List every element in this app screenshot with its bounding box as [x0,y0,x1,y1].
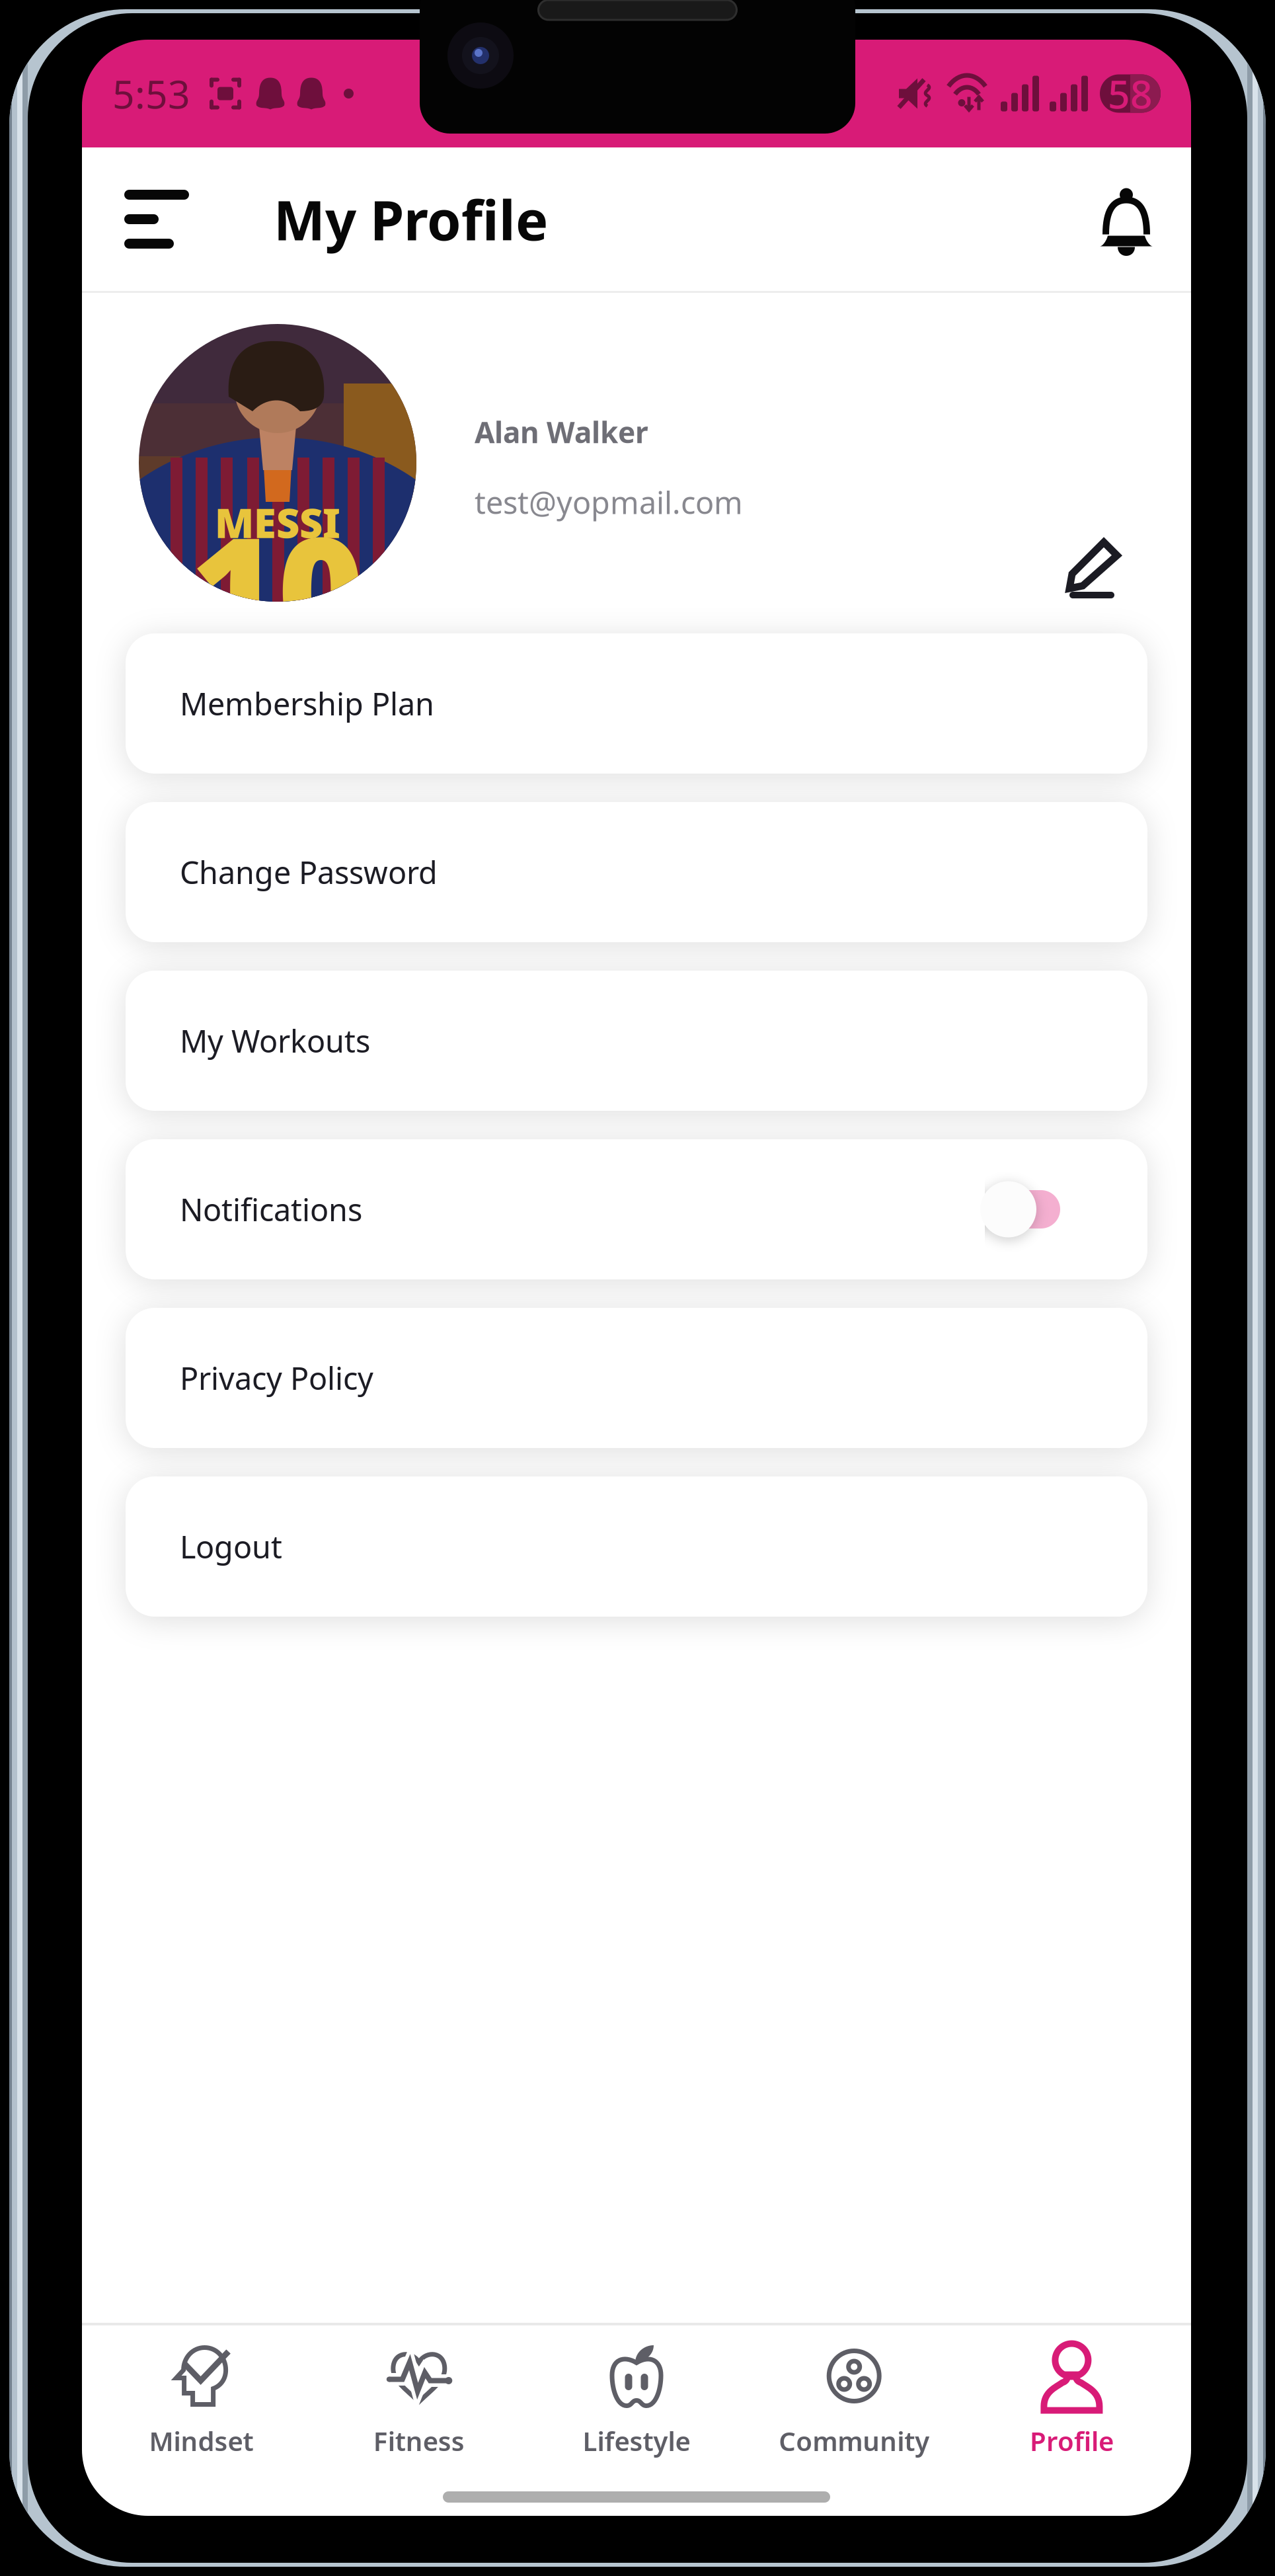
staticText: My Profile [274,183,548,255]
button[interactable]: Membership Plan [126,633,1147,774]
staticText: Membership Plan [180,683,434,724]
staticText: Lifestyle [583,2423,690,2458]
button[interactable]: My Workouts [126,971,1147,1111]
button[interactable]: Profile [963,2325,1180,2491]
staticText: Fitness [373,2423,465,2458]
button[interactable]: Logout [126,1476,1147,1617]
button[interactable]: Mindset [93,2325,310,2491]
button[interactable]: Community [745,2325,963,2491]
staticText: Change Password [180,852,438,893]
staticText: Notifications [180,1189,362,1230]
staticText: 58 [1108,68,1153,119]
staticText: 5:53 [112,68,190,119]
button[interactable]: Menu [110,174,205,264]
button[interactable]: Lifestyle [528,2325,745,2491]
staticText: Community [779,2423,929,2458]
staticText: Profile [1030,2423,1114,2458]
staticText: 10 [191,489,364,686]
button[interactable]: Notifications [1091,179,1162,260]
staticText: Alan Walker [475,413,648,451]
button[interactable]: Fitness [310,2325,528,2491]
button[interactable]: Notifications [126,1139,1147,1279]
staticText: Logout [180,1526,282,1567]
staticText: My Workouts [180,1020,370,1061]
button[interactable]: Change Password [126,802,1147,942]
staticText: Mindset [149,2423,254,2458]
staticText: Privacy Policy [180,1357,373,1398]
button[interactable]: Edit profile [1066,541,1122,600]
button[interactable]: Privacy Policy [126,1308,1147,1448]
staticText: test@yopmail.com [475,482,743,523]
staticText: MESSI [215,495,340,549]
